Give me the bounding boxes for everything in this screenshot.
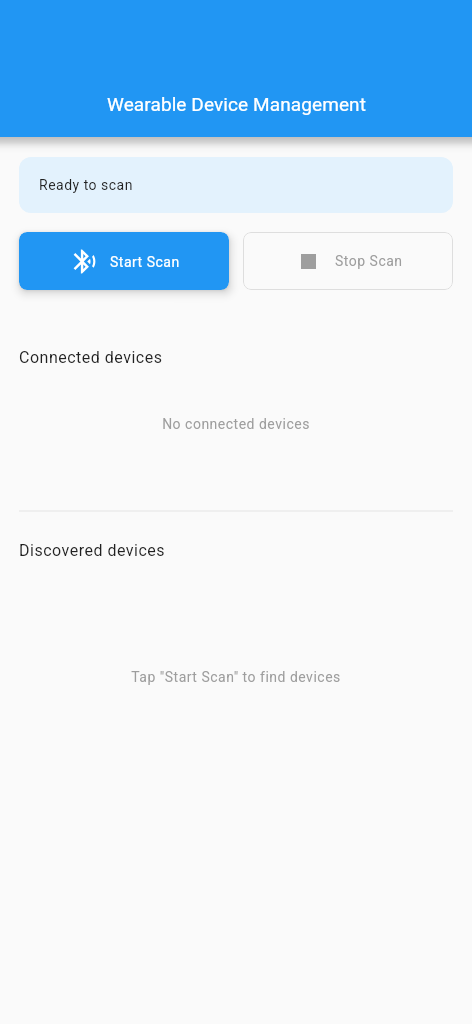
staticText: Stop Scan <box>335 253 403 269</box>
button[interactable]: Start Scan <box>19 232 229 290</box>
staticText: Tap "Start Scan" to find devices <box>0 669 472 685</box>
staticText: Start Scan <box>110 254 180 270</box>
button[interactable]: Stop Scan <box>243 232 453 290</box>
staticText: Discovered devices <box>19 541 166 560</box>
staticText: Ready to scan <box>39 177 133 193</box>
staticText: Connected devices <box>19 348 163 367</box>
staticText: No connected devices <box>0 416 472 432</box>
staticText: Wearable Device Management <box>107 93 366 115</box>
